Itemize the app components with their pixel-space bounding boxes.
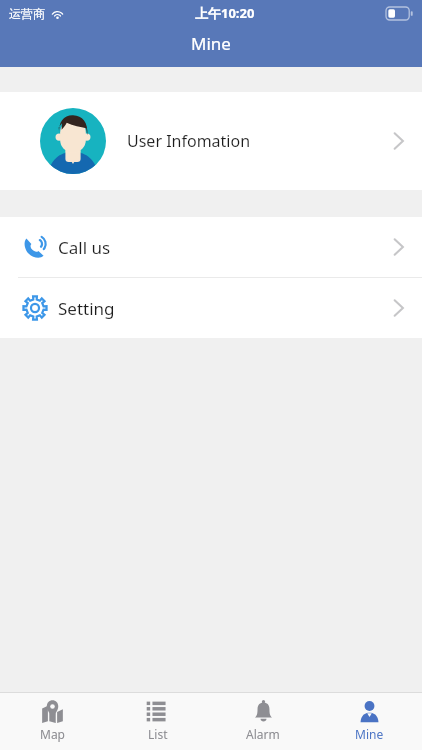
- staticText: 上午10:20: [195, 4, 255, 22]
- button[interactable]: Alarm: [210, 693, 316, 750]
- staticText: Setting: [58, 297, 115, 320]
- button[interactable]: Map: [0, 693, 105, 750]
- staticText: Mine: [355, 726, 384, 742]
- button[interactable]: Mine: [316, 693, 422, 750]
- staticText: List: [148, 726, 168, 742]
- staticText: Map: [40, 726, 65, 742]
- button[interactable]: Setting: [0, 278, 422, 338]
- staticText: Mine: [191, 32, 231, 55]
- staticText: Call us: [58, 236, 111, 259]
- staticText: Alarm: [246, 726, 280, 742]
- staticText: 运营商: [9, 6, 45, 21]
- button[interactable]: User Infomation: [0, 92, 422, 190]
- staticText: User Infomation: [127, 130, 251, 152]
- button[interactable]: Call us: [0, 217, 422, 277]
- button[interactable]: List: [105, 693, 210, 750]
